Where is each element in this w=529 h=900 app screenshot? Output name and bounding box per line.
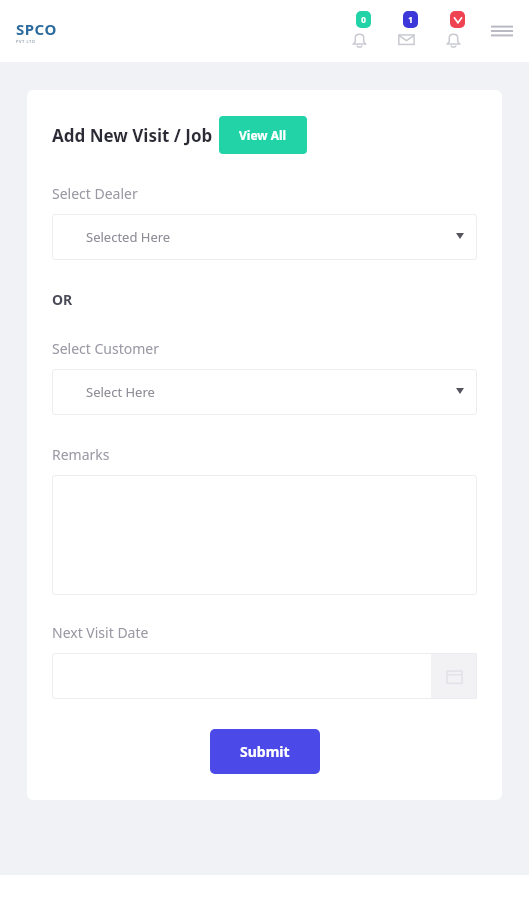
button[interactable]: Pick date [431,653,477,699]
button[interactable]: Submit [210,729,320,774]
staticText: Submit [240,742,290,761]
staticText: OR [52,290,73,309]
button[interactable]: SPCO home [12,15,61,48]
button[interactable]: Messages [391,11,421,51]
staticText: Select Dealer [52,184,138,203]
staticText: Remarks [52,445,110,464]
staticText: 0 [361,14,366,25]
button[interactable]: Notifications [344,11,374,51]
staticText: Select Customer [52,339,160,358]
staticText: Add New Visit / Job [52,124,213,147]
button[interactable]: View All [219,116,307,154]
staticText: View All [239,127,287,143]
button[interactable]: Menu [485,14,519,48]
button[interactable] [52,653,431,699]
button[interactable]: Select Here [52,369,477,415]
staticText: Selected Here [86,228,171,246]
staticText: Select Here [86,383,155,401]
staticText: PVT LTD [16,39,36,44]
staticText: 1 [408,14,413,25]
staticText: Next Visit Date [52,623,149,642]
button[interactable]: Alerts [438,11,468,51]
staticText: SPCO [16,19,57,39]
button[interactable]: Selected Here [52,214,477,260]
